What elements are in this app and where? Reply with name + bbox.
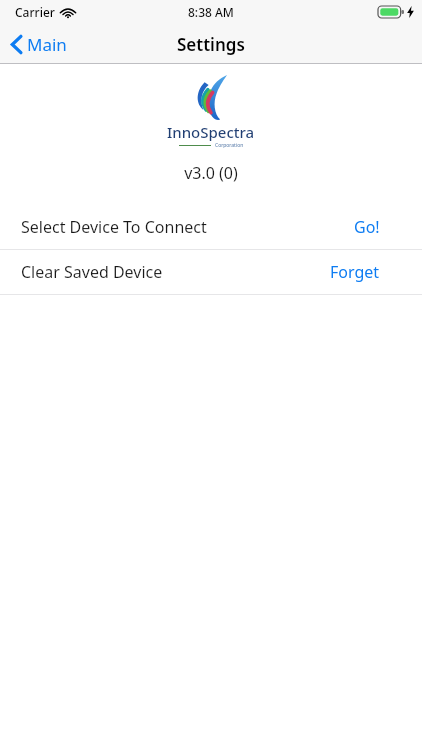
button[interactable]: Clear Saved Device [0,250,422,294]
other: Battery [378,6,404,18]
staticText: Carrier [15,4,55,20]
button[interactable]: Select Device To Connect [0,205,422,249]
staticText: Select Device To Connect [21,216,207,238]
other: Charging [407,6,414,18]
staticText: 8:38 AM [188,4,234,20]
staticText: Corporation [215,142,244,149]
staticText: Forget [330,261,380,283]
staticText: Go! [354,216,380,238]
staticText: v3.0 (0) [0,162,422,184]
staticText: Main [27,33,67,56]
other: Wi-Fi [61,7,75,18]
button[interactable]: Main [0,26,81,63]
staticText: Clear Saved Device [21,261,163,283]
staticText: InnoSpectra [167,122,255,142]
staticText: Settings [177,33,245,56]
